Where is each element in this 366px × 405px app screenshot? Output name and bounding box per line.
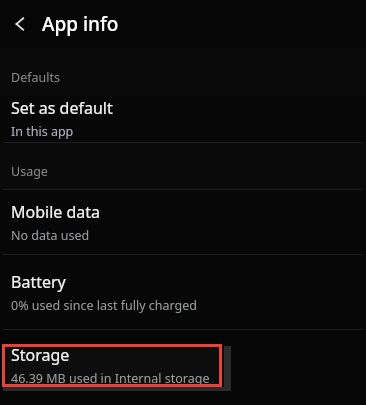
staticText: App info [42,11,119,37]
staticText: 46.39 MB used in Internal storage [11,370,210,387]
staticText: 0% used since last fully charged [11,297,198,314]
button[interactable]: Back [0,4,40,44]
staticText: In this app [11,123,74,140]
staticText: Defaults [11,69,60,86]
staticText: Usage [11,163,48,180]
staticText: Storage [11,344,70,366]
button[interactable]: Storage [2,344,224,387]
button[interactable]: Set as default [0,95,366,142]
staticText: Set as default [11,97,113,119]
button[interactable]: Mobile data [0,190,366,254]
staticText: Mobile data [11,201,101,223]
staticText: Battery [11,271,66,293]
staticText: No data used [11,227,90,244]
button[interactable]: Battery [0,255,366,329]
